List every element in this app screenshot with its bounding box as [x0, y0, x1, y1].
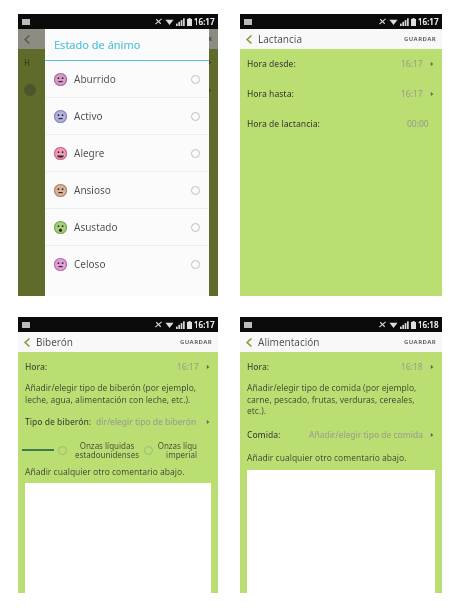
button[interactable]: GUARDAR: [399, 35, 442, 43]
button[interactable]: Hora hasta:: [240, 79, 442, 109]
staticText: 16:18: [418, 319, 439, 330]
button[interactable]: Celoso: [45, 246, 209, 282]
staticText: GUARDAR: [180, 338, 213, 346]
button[interactable]: Back: [240, 337, 257, 348]
staticText: Añadir/elegir tipo de biberón (por ejemp…: [25, 382, 197, 406]
staticText: Activo: [74, 109, 103, 123]
staticText: 16:17: [194, 319, 215, 330]
staticText: H: [24, 57, 30, 68]
button[interactable]: Hora:: [240, 352, 442, 382]
staticText: Hora:: [25, 361, 48, 373]
staticText: Lactancia: [258, 32, 303, 46]
staticText: Onzas líqu imperial: [157, 440, 197, 461]
staticText: Alimentación: [258, 335, 320, 349]
staticText: Hora de lactancia:: [247, 118, 320, 130]
staticText: 16:17: [401, 58, 423, 70]
staticText: 16:17: [177, 361, 199, 373]
button[interactable]: Comida:: [240, 426, 442, 444]
staticText: Añadir/elegir tipo de comida (por ejempl…: [247, 382, 417, 417]
staticText: Estado de ánimo: [54, 37, 141, 52]
button[interactable]: Alegre: [45, 135, 209, 171]
staticText: 00:00: [407, 118, 429, 130]
button[interactable]: Back: [240, 34, 257, 45]
staticText: Añadir cualquier otro comentario abajo.: [247, 452, 407, 464]
staticText: dir/elegir tipo de biberón: [96, 416, 197, 428]
button[interactable]: Tipo de biberón:: [18, 413, 218, 431]
staticText: 16:17: [418, 16, 439, 27]
staticText: 16:18: [401, 361, 423, 373]
button[interactable]: Hora:: [18, 352, 218, 382]
staticText: GUARDAR: [404, 338, 437, 346]
button[interactable]: Back: [18, 337, 35, 348]
staticText: Tipo de biberón:: [25, 416, 92, 428]
staticText: Añadir cualquier otro comentario abajo.: [25, 466, 185, 478]
staticText: Onzas líquidas estadounidenses: [75, 440, 139, 461]
button[interactable]: GUARDAR: [175, 338, 218, 346]
staticText: Hora:: [247, 361, 270, 373]
button[interactable]: GUARDAR: [399, 338, 442, 346]
button[interactable]: Hora desde:: [240, 49, 442, 79]
staticText: 16:17: [194, 16, 215, 27]
staticText: 16:17: [401, 88, 423, 100]
staticText: Añadir/elegir tipo de comida: [309, 429, 423, 441]
staticText: Comida:: [247, 429, 281, 441]
staticText: Hora desde:: [247, 58, 296, 70]
staticText: Alegre: [74, 146, 105, 160]
staticText: Hora hasta:: [247, 88, 294, 100]
staticText: Asustado: [74, 220, 118, 234]
staticText: Celoso: [74, 257, 106, 271]
button[interactable]: Ansioso: [45, 172, 209, 208]
staticText: Ansioso: [74, 183, 111, 197]
button[interactable]: Aburrido: [45, 61, 209, 97]
staticText: AR: [204, 35, 213, 43]
button[interactable]: Activo: [45, 98, 209, 134]
staticText: GUARDAR: [404, 35, 437, 43]
staticText: Aburrido: [74, 72, 116, 86]
button[interactable]: Asustado: [45, 209, 209, 245]
staticText: Biberón: [36, 335, 74, 349]
button[interactable]: Hora de lactancia:: [240, 109, 442, 139]
